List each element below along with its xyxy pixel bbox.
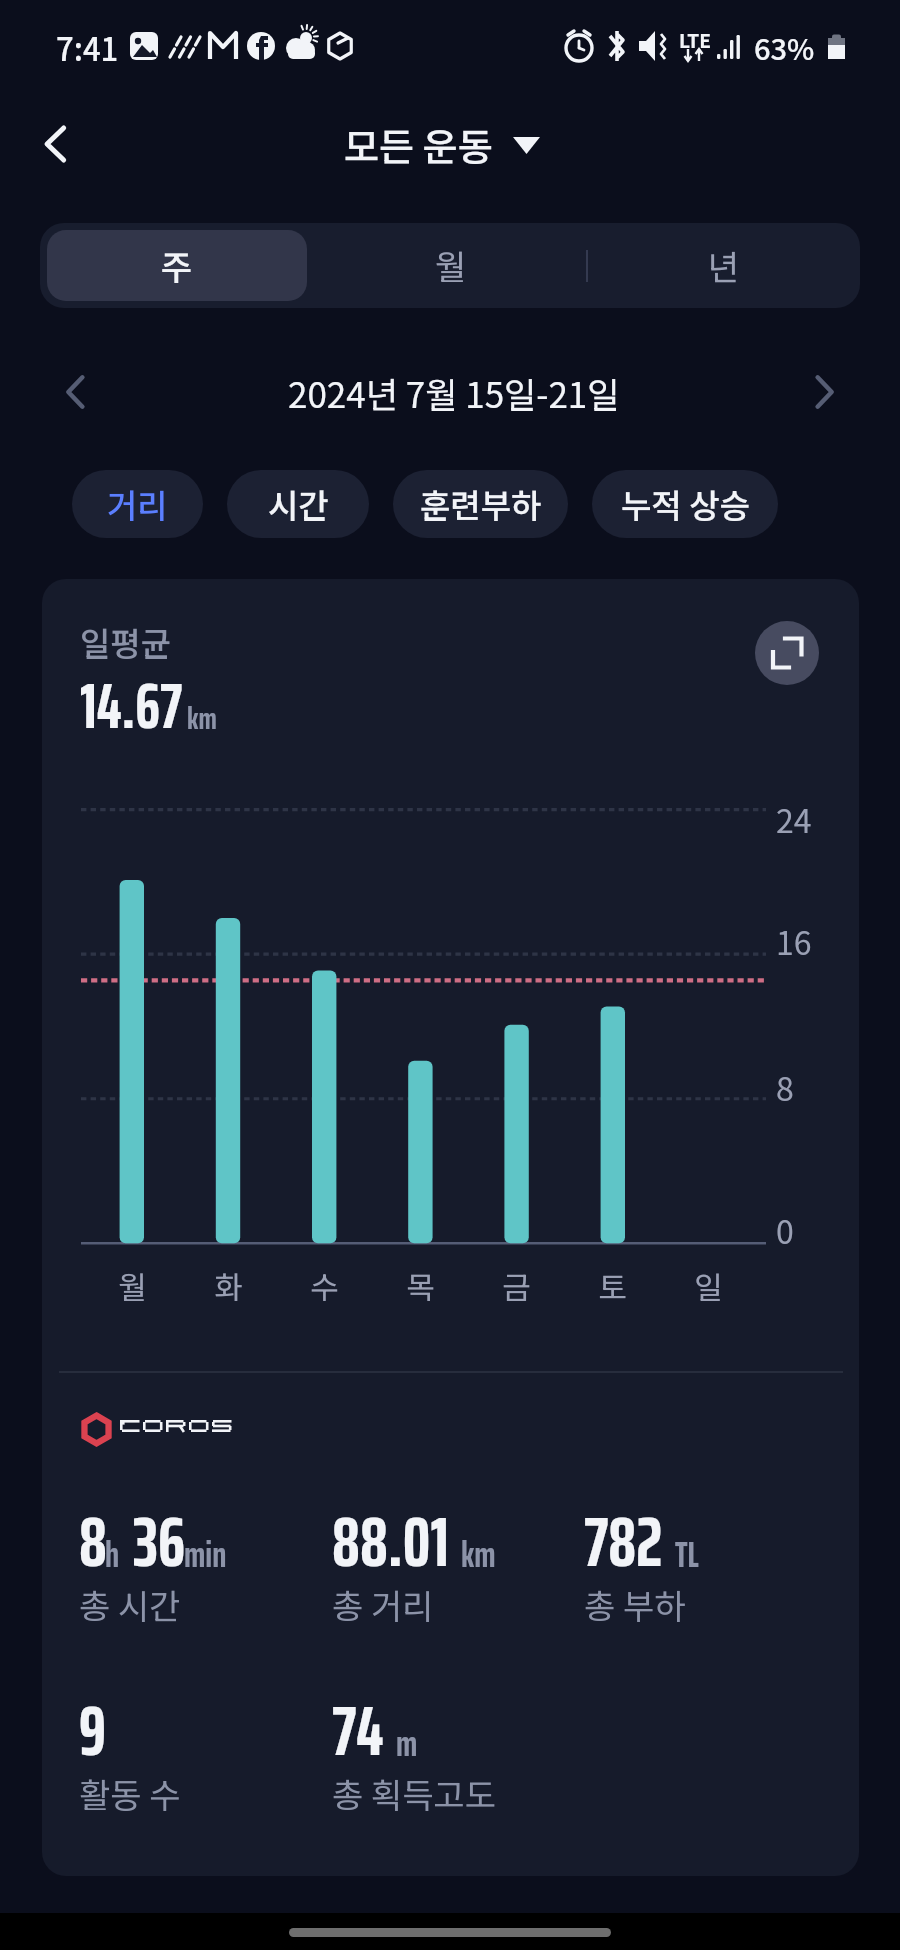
staticText: h <box>105 1526 120 1583</box>
staticText: 활동 수 <box>79 1769 181 1818</box>
staticText: 목 <box>406 1263 435 1308</box>
button[interactable]: 거리 <box>72 470 203 538</box>
staticText: 2024년 7월 15일-21일 <box>288 367 620 418</box>
staticText: 9 <box>79 1677 107 1786</box>
staticText: 일평균 <box>80 618 172 666</box>
button[interactable]: 훈련부하 <box>393 470 568 538</box>
staticText: 총 거리 <box>332 1580 434 1629</box>
staticText: 년 <box>708 241 740 290</box>
button[interactable]: Previous week <box>44 360 108 424</box>
button[interactable]: Back <box>24 112 88 176</box>
staticText: 월 <box>118 1263 147 1308</box>
button[interactable]: 주 <box>47 230 307 301</box>
staticText: 0 <box>776 1207 794 1253</box>
button[interactable]: 년 <box>594 230 853 301</box>
staticText: 24 <box>776 796 812 842</box>
staticText: 금 <box>502 1263 531 1308</box>
staticText: 토 <box>598 1263 627 1308</box>
button[interactable]: 시간 <box>227 470 369 538</box>
staticText: 74 <box>332 1677 384 1786</box>
staticText: 88.01 <box>332 1488 449 1597</box>
button[interactable]: 모든 운동 <box>344 117 540 172</box>
staticText: 월 <box>435 241 467 290</box>
button[interactable]: 월 <box>321 230 580 301</box>
button[interactable]: Next week <box>792 360 856 424</box>
staticText: 거리 <box>107 480 168 528</box>
staticText: 총 시간 <box>79 1580 181 1629</box>
staticText: 63% <box>754 26 815 68</box>
staticText: 주 <box>161 241 193 290</box>
button[interactable]: 누적 상승 <box>592 470 778 538</box>
staticText: 36 <box>133 1488 186 1597</box>
staticText: 총 부하 <box>584 1580 686 1629</box>
button[interactable]: Expand chart <box>755 621 819 685</box>
staticText: 8 <box>776 1064 794 1110</box>
staticText: 8 <box>79 1488 107 1597</box>
staticText: 화 <box>214 1263 243 1308</box>
staticText: LTE <box>679 26 711 54</box>
staticText: 수 <box>310 1263 339 1308</box>
staticText: m <box>396 1715 418 1772</box>
staticText: 훈련부하 <box>420 480 542 528</box>
staticText: 782 <box>584 1488 663 1597</box>
staticText: km <box>187 694 217 743</box>
staticText: 7:41 <box>56 25 119 70</box>
staticText: 누적 상승 <box>621 480 750 528</box>
staticText: 일 <box>694 1263 723 1308</box>
staticText: 시간 <box>268 480 329 528</box>
staticText: min <box>184 1526 227 1583</box>
staticText: 총 획득고도 <box>332 1769 497 1818</box>
staticText: TL <box>675 1526 699 1583</box>
staticText: km <box>461 1526 496 1583</box>
staticText: 모든 운동 <box>344 117 493 172</box>
staticText: 14.67 <box>80 656 183 755</box>
staticText: 16 <box>776 918 812 964</box>
